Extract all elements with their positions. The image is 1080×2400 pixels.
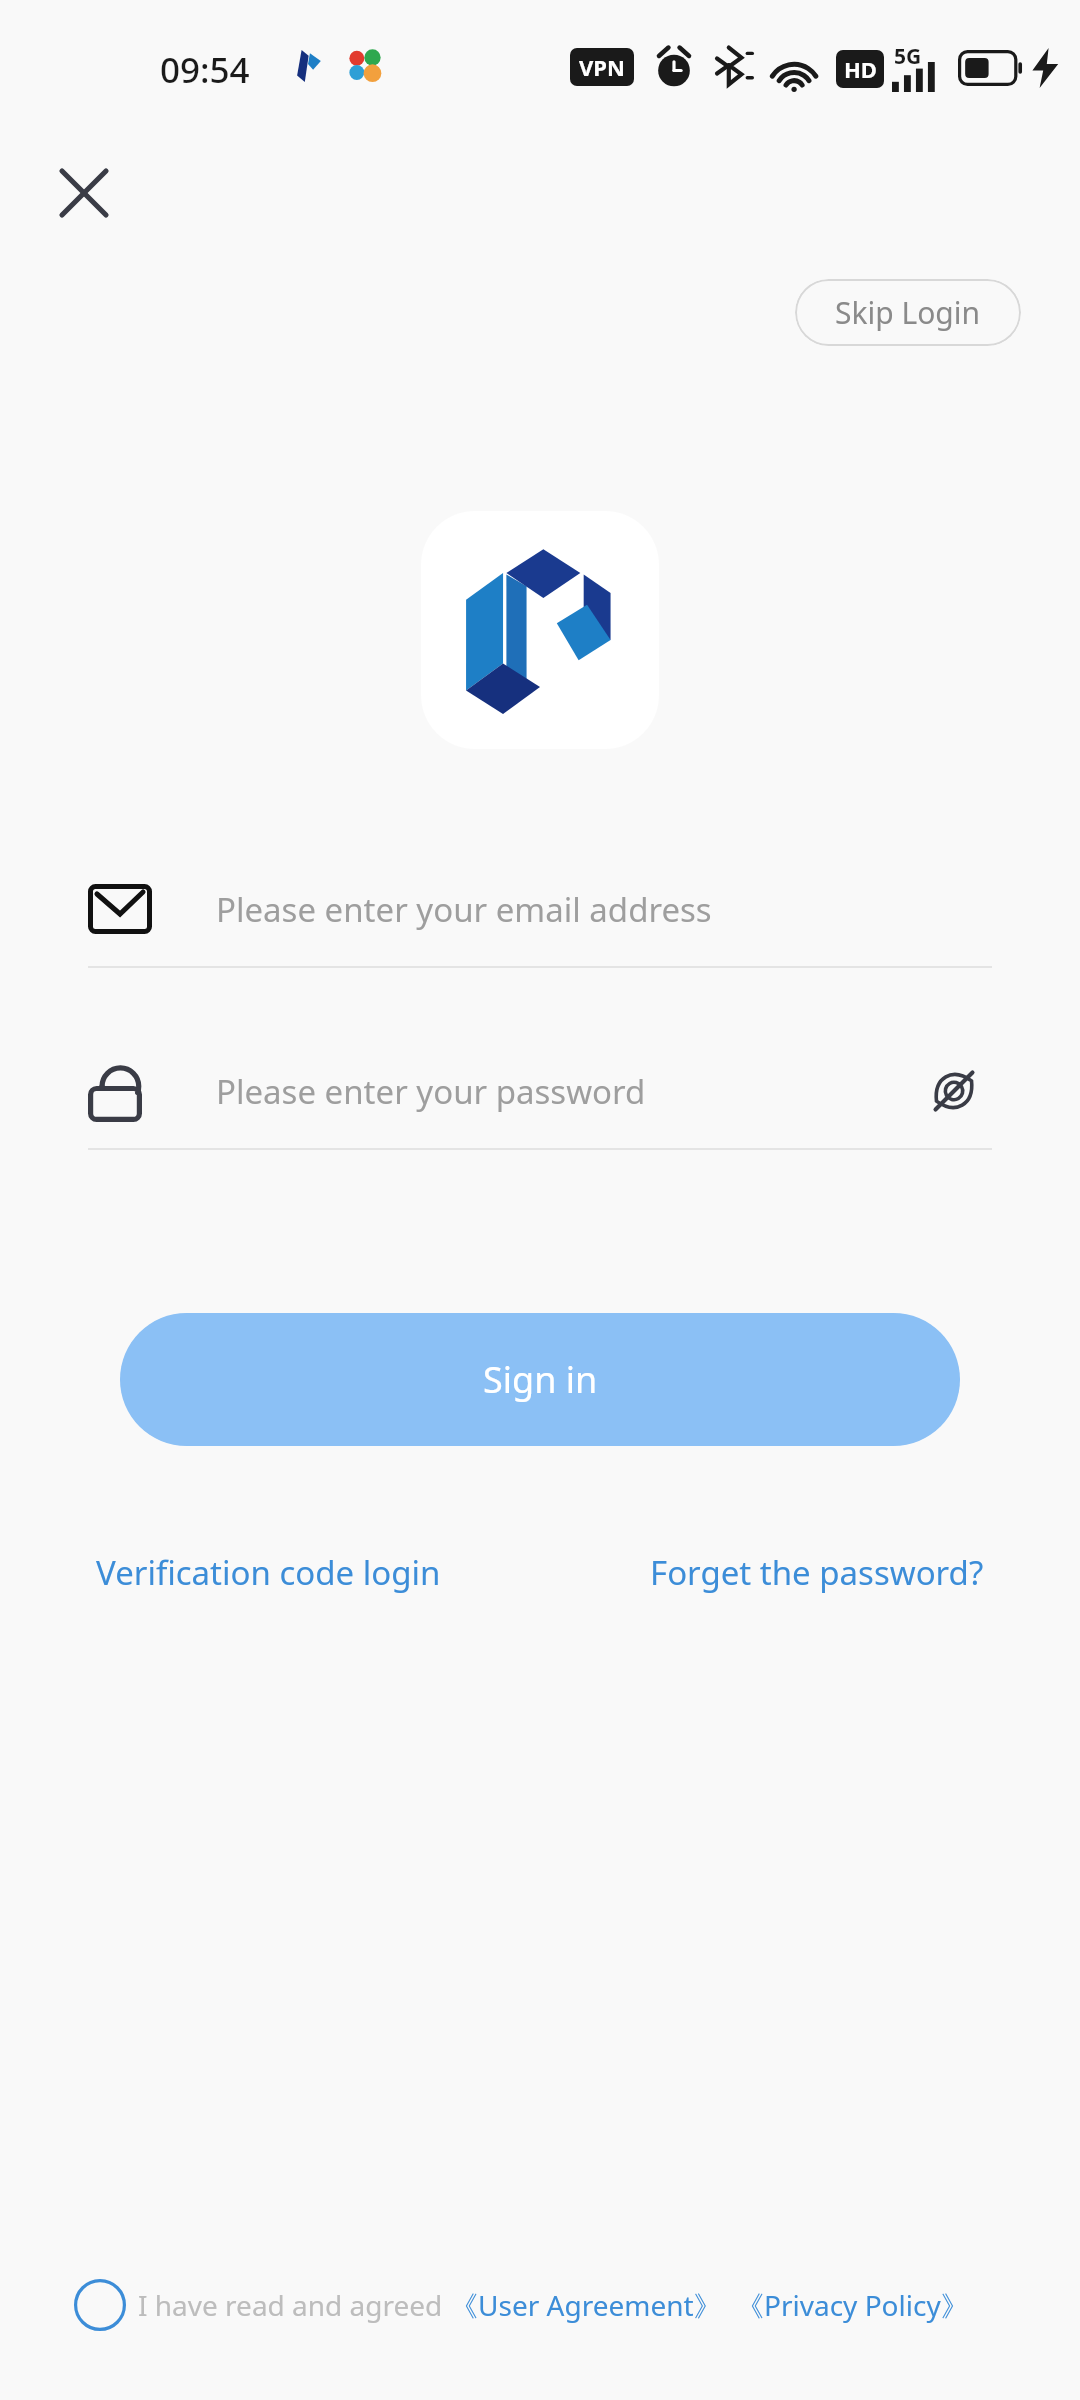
button[interactable]: Agree to terms bbox=[68, 2273, 132, 2337]
button[interactable]: Show password bbox=[916, 1053, 992, 1129]
button[interactable]: Verification code login bbox=[96, 1542, 441, 1603]
button[interactable]: Sign in bbox=[120, 1313, 960, 1446]
button[interactable]: Please enter your password bbox=[88, 1034, 992, 1148]
staticText: Sign in bbox=[483, 1355, 598, 1404]
staticText: Please enter your email address bbox=[216, 887, 712, 932]
staticText: Please enter your password bbox=[216, 1069, 646, 1114]
staticText: I have read and agreed bbox=[138, 2286, 450, 2324]
staticText: VPN bbox=[579, 52, 625, 82]
staticText: 《Privacy Policy》 bbox=[736, 2286, 969, 2324]
button[interactable]: 《Privacy Policy》 bbox=[736, 2286, 969, 2324]
button[interactable]: Skip Login bbox=[795, 279, 1021, 346]
button[interactable]: 《User Agreement》 bbox=[450, 2286, 722, 2324]
button[interactable]: Forget the password? bbox=[650, 1542, 984, 1603]
staticText: HD bbox=[844, 54, 877, 84]
staticText: Forget the password? bbox=[650, 1550, 984, 1595]
staticText: 5G bbox=[894, 42, 922, 71]
staticText: 09:54 bbox=[160, 46, 250, 94]
button[interactable]: Close bbox=[36, 145, 132, 241]
staticText: Verification code login bbox=[96, 1550, 441, 1595]
button[interactable]: Please enter your email address bbox=[88, 852, 992, 966]
staticText: Skip Login bbox=[835, 292, 981, 333]
staticText: 《User Agreement》 bbox=[450, 2286, 722, 2324]
